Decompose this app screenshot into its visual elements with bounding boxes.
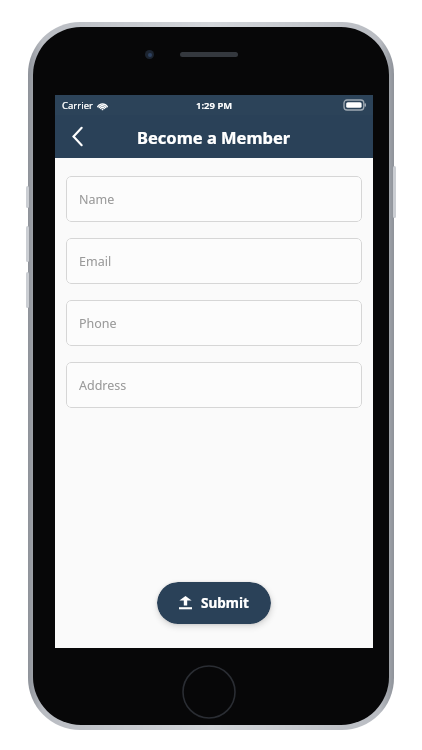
- staticText: Phone: [79, 315, 117, 332]
- staticText: 1:29 PM: [196, 99, 233, 112]
- button[interactable]: Back: [55, 115, 99, 158]
- staticText: Submit: [201, 594, 249, 612]
- staticText: Address: [79, 377, 127, 394]
- button[interactable]: Email: [66, 238, 362, 284]
- button[interactable]: Submit: [157, 582, 271, 624]
- button[interactable]: Address: [66, 362, 362, 408]
- staticText: Become a Member: [137, 126, 291, 148]
- button[interactable]: Name: [66, 176, 362, 222]
- staticText: Name: [79, 191, 115, 208]
- button[interactable]: Phone: [66, 300, 362, 346]
- staticText: Carrier: [62, 99, 93, 112]
- staticText: Email: [79, 253, 112, 270]
